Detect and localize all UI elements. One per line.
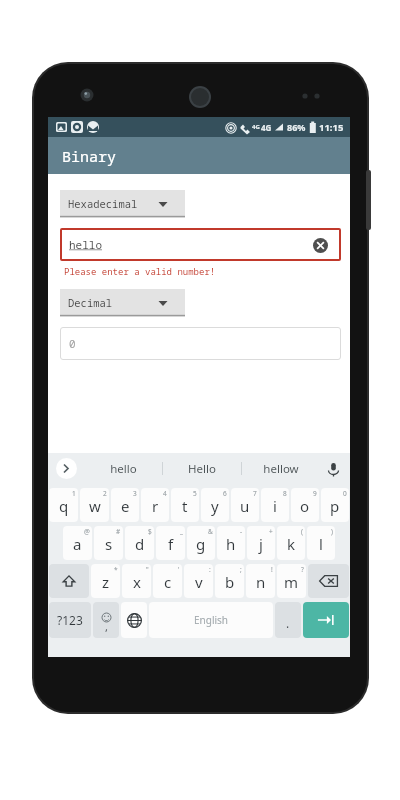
button[interactable]: Hexadecimal: [60, 190, 185, 218]
staticText: t: [182, 496, 188, 516]
staticText: m: [284, 572, 299, 592]
button[interactable]: e: [111, 488, 139, 522]
staticText: 8: [283, 489, 287, 498]
button[interactable]: hellow: [242, 453, 320, 484]
staticText: ?: [301, 565, 304, 574]
staticText: y: [211, 496, 219, 516]
staticText: 7: [253, 489, 257, 498]
staticText: l: [319, 534, 323, 554]
staticText: 5: [193, 489, 197, 498]
button[interactable]: y: [201, 488, 229, 522]
staticText: w: [89, 496, 101, 516]
staticText: s: [105, 534, 113, 554]
button[interactable]: k: [277, 526, 305, 560]
button[interactable]: o: [291, 488, 319, 522]
button[interactable]: Clear text: [311, 236, 329, 254]
staticText: 0: [343, 489, 347, 498]
staticText: Binary: [62, 146, 117, 166]
button[interactable]: w: [80, 488, 109, 522]
button[interactable]: Change keyboard language: [121, 602, 147, 638]
staticText: hellow: [263, 461, 299, 477]
staticText: x: [133, 572, 141, 592]
button[interactable]: a: [63, 526, 92, 560]
staticText: 3: [133, 489, 137, 498]
staticText: v: [195, 572, 203, 592]
button[interactable]: n: [246, 564, 275, 598]
staticText: f: [168, 534, 174, 554]
button[interactable]: English: [149, 602, 273, 638]
staticText: @: [84, 527, 90, 536]
staticText: k: [287, 534, 296, 554]
staticText: d: [135, 534, 145, 554]
staticText: #: [116, 527, 121, 536]
button[interactable]: c: [153, 564, 182, 598]
staticText: j: [259, 534, 263, 554]
staticText: h: [226, 534, 236, 554]
button[interactable]: h: [217, 526, 245, 560]
staticText: !: [271, 565, 273, 574]
button[interactable]: ?123: [49, 602, 91, 638]
button[interactable]: m: [277, 564, 306, 598]
button[interactable]: r: [141, 488, 169, 522]
button[interactable]: v: [184, 564, 213, 598]
staticText: .: [286, 615, 290, 631]
button[interactable]: p: [321, 488, 349, 522]
staticText: u: [240, 496, 250, 516]
staticText: (: [301, 527, 303, 536]
staticText: q: [59, 496, 69, 516]
button[interactable]: b: [215, 564, 244, 598]
staticText: *: [114, 565, 118, 574]
staticText: r: [152, 496, 159, 516]
button[interactable]: .: [275, 602, 301, 638]
staticText: ?123: [57, 612, 83, 628]
staticText: English: [194, 613, 229, 627]
button[interactable]: x: [122, 564, 151, 598]
staticText: p: [330, 496, 340, 516]
staticText: a: [73, 534, 82, 554]
button[interactable]: Hello: [163, 453, 241, 484]
staticText: hello: [69, 237, 102, 252]
button[interactable]: u: [231, 488, 259, 522]
staticText: ': [178, 565, 180, 574]
button[interactable]: hello: [60, 228, 341, 261]
staticText: 6: [223, 489, 227, 498]
button[interactable]: d: [125, 526, 154, 560]
button[interactable]: g: [187, 526, 215, 560]
staticText: +: [269, 527, 273, 536]
staticText: Decimal: [68, 296, 113, 310]
staticText: 4G: [261, 122, 272, 133]
staticText: ,: [105, 619, 108, 634]
button[interactable]: Voice input: [323, 459, 343, 479]
staticText: c: [164, 572, 172, 592]
staticText: Please enter a valid number!: [64, 265, 216, 277]
staticText: ): [331, 527, 333, 536]
button[interactable]: Enter: [303, 602, 349, 638]
staticText: 0: [69, 336, 76, 351]
staticText: -: [240, 527, 243, 536]
staticText: _: [180, 527, 183, 536]
staticText: 9: [313, 489, 317, 498]
button[interactable]: 0: [60, 327, 341, 360]
staticText: 11:15: [319, 121, 344, 134]
button[interactable]: f: [156, 526, 185, 560]
button[interactable]: Decimal: [60, 289, 185, 317]
button[interactable]: i: [261, 488, 289, 522]
button[interactable]: t: [171, 488, 199, 522]
staticText: :: [209, 565, 211, 574]
staticText: ;: [240, 565, 242, 574]
staticText: 1: [72, 489, 76, 498]
button[interactable]: l: [307, 526, 335, 560]
button[interactable]: z: [91, 564, 120, 598]
staticText: o: [300, 496, 310, 516]
staticText: $: [148, 527, 152, 536]
button[interactable]: q: [49, 488, 78, 522]
staticText: n: [256, 572, 266, 592]
button[interactable]: s: [94, 526, 123, 560]
button[interactable]: Shift: [49, 564, 89, 598]
button[interactable]: Backspace: [308, 564, 349, 598]
staticText: Hexadecimal: [68, 197, 138, 211]
button[interactable]: hello: [84, 453, 162, 484]
button[interactable]: More suggestions: [56, 458, 77, 479]
button[interactable]: j: [247, 526, 275, 560]
button[interactable]: Emoji and comma: [93, 602, 119, 638]
